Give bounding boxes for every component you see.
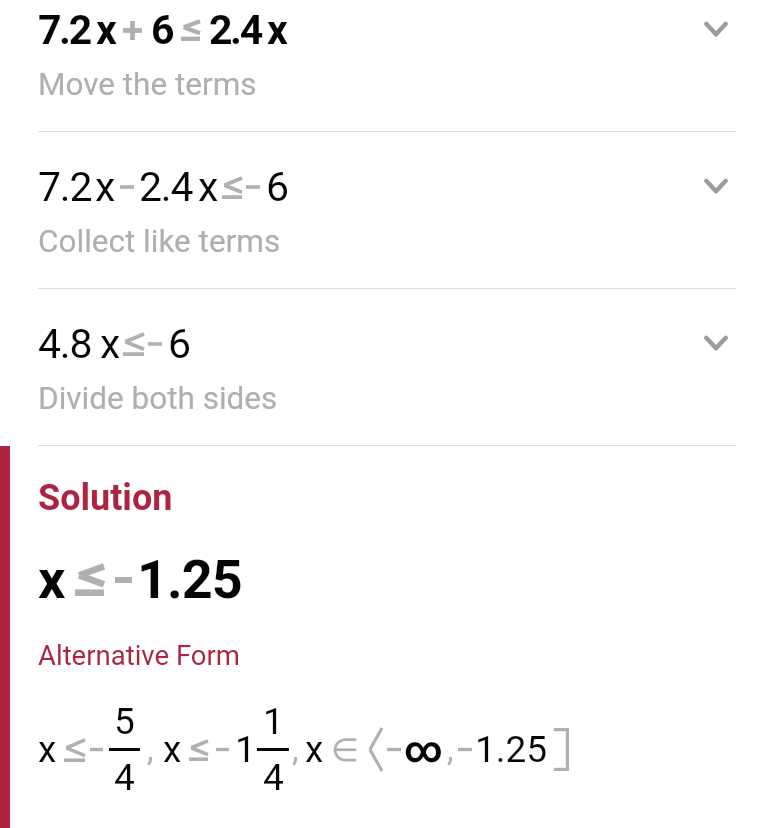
staticText: 1.25 [475, 728, 548, 771]
staticText: x [305, 728, 324, 771]
staticText: Move the terms [38, 66, 257, 103]
staticText: Divide both sides [38, 380, 278, 417]
staticText: x [163, 728, 182, 771]
staticText: x [95, 163, 116, 211]
staticText: x [100, 320, 121, 368]
staticText: Solution [38, 477, 173, 519]
staticText: 1 [263, 700, 284, 743]
staticText: x [96, 6, 117, 54]
staticText: 6 [168, 320, 192, 368]
staticText: 4 [263, 756, 284, 799]
staticText: , [447, 730, 454, 769]
staticText: x [267, 6, 288, 54]
staticText: , [147, 730, 154, 769]
staticText: ∞ [404, 728, 443, 771]
staticText: x [38, 728, 57, 771]
staticText: 4 [114, 756, 135, 799]
staticText: 4.8 [38, 320, 92, 368]
staticText: 7.2 [38, 163, 92, 211]
staticText: 6 [266, 163, 290, 211]
button[interactable]: 7.2 [0, 157, 774, 314]
staticText: 2.4 [139, 163, 193, 211]
staticText: 1 [235, 728, 256, 771]
staticText: Collect like terms [38, 223, 281, 260]
staticText: , [292, 730, 299, 769]
button[interactable]: 7.2 [0, 0, 774, 157]
staticText: 5 [114, 700, 135, 743]
staticText: ∈ [331, 731, 359, 768]
staticText: 7.2 [38, 6, 90, 54]
button[interactable]: Expand step [701, 14, 731, 44]
staticText: Alternative Form [38, 639, 240, 671]
button[interactable]: Expand step [701, 328, 731, 358]
staticText: x [198, 163, 219, 211]
button[interactable]: Expand step [701, 171, 731, 201]
staticText: 6 [151, 6, 175, 54]
staticText: 2.4 [209, 6, 261, 54]
staticText: x [38, 548, 66, 611]
staticText: 1.25 [137, 548, 242, 611]
button[interactable]: 4.8 [0, 314, 774, 471]
